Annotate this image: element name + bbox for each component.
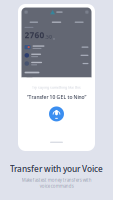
staticText: 2760 — [24, 29, 44, 41]
staticText: Try saying something like this — [32, 85, 81, 90]
button[interactable]: Start voice command — [48, 105, 65, 122]
staticText: Make fastest money transfers with voice … — [21, 177, 91, 189]
staticText: .50 — [45, 34, 52, 40]
staticText: “Transfer 10 GEL to Nino” — [26, 94, 86, 100]
staticText: Transfer with your Voice — [10, 163, 103, 175]
